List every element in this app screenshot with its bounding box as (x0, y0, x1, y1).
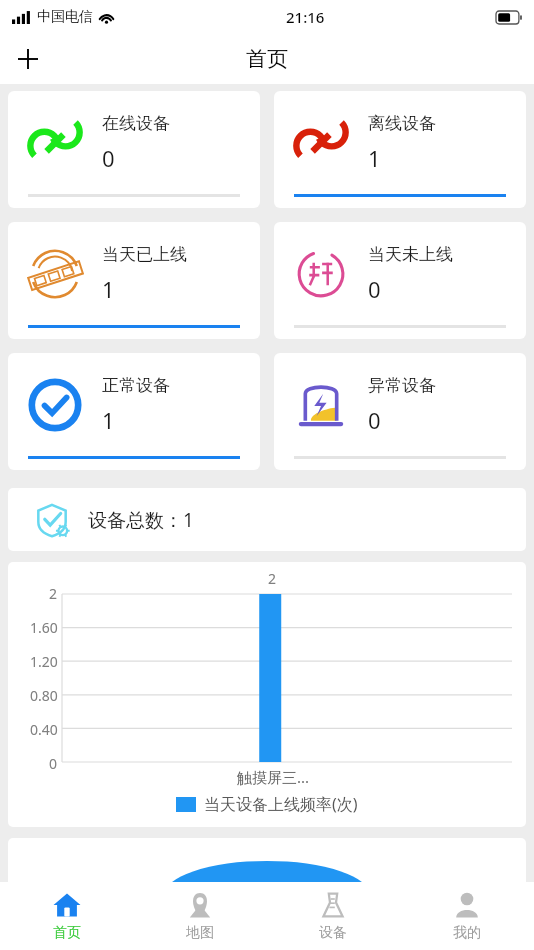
staticText: 当天未上线 (368, 244, 453, 265)
button[interactable]: 地图 (133, 882, 266, 950)
staticText: 1.20 (30, 652, 58, 671)
staticText: 首页 (53, 924, 81, 942)
staticText: 1 (368, 143, 381, 173)
button[interactable]: 我的 (400, 882, 534, 950)
staticText: 当天设备上线频率(次) (204, 793, 358, 815)
staticText: 0 (49, 754, 58, 773)
staticText: 在线设备 (102, 113, 170, 134)
staticText: 0 (368, 405, 381, 435)
staticText: 2 (49, 584, 58, 603)
staticText: 首页 (246, 46, 288, 72)
staticText: 地图 (186, 924, 214, 942)
staticText: 设备总数：1 (88, 507, 194, 533)
staticText: 设备 (319, 924, 347, 942)
button[interactable]: Add (8, 39, 48, 79)
staticText: 离线设备 (368, 113, 436, 134)
staticText: 1 (102, 405, 115, 435)
button[interactable]: 首页 (0, 882, 133, 950)
button[interactable]: 当天未上线 (274, 222, 526, 339)
staticText: 异常设备 (368, 375, 436, 396)
staticText: 2 (268, 569, 277, 588)
staticText: 1 (102, 274, 115, 304)
button[interactable]: 在线设备 (8, 91, 260, 208)
button[interactable]: 设备总数：1 (8, 488, 526, 551)
button[interactable]: 当天已上线 (8, 222, 260, 339)
staticText: 触摸屏三... (237, 767, 310, 787)
button[interactable]: 正常设备 (8, 353, 260, 470)
staticText: 1.60 (30, 618, 58, 637)
staticText: 我的 (453, 924, 481, 942)
staticText: 正常设备 (102, 375, 170, 396)
staticText: 0.40 (30, 720, 58, 739)
staticText: 0.80 (30, 686, 58, 705)
staticText: 0 (368, 274, 381, 304)
staticText: 中国电信 (37, 8, 93, 26)
staticText: 0 (102, 143, 115, 173)
staticText: 21:16 (286, 7, 325, 27)
staticText: 当天已上线 (102, 244, 187, 265)
button[interactable]: 异常设备 (274, 353, 526, 470)
button[interactable]: 设备 (266, 882, 400, 950)
button[interactable]: 离线设备 (274, 91, 526, 208)
